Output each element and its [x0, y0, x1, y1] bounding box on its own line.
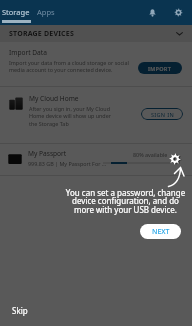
button[interactable]: STORAGE DEVICES	[0, 25, 192, 42]
button[interactable]: My Passport	[0, 144, 192, 175]
staticText: My Passport	[28, 149, 67, 158]
staticText: Apps	[37, 7, 55, 17]
staticText: 999.83 GB | My Passport For ...	[28, 160, 107, 167]
button[interactable]: IMPORT	[138, 62, 182, 74]
staticText: STORAGE DEVICES	[9, 29, 74, 39]
staticText: After you sign in, your My Cloud Home de…	[29, 105, 111, 128]
button[interactable]: Device settings	[169, 152, 183, 166]
staticText: IMPORT	[148, 65, 172, 72]
staticText: Import your data from a cloud storage or…	[9, 59, 133, 74]
staticText: 80% available	[133, 151, 168, 158]
button[interactable]: Apps	[32, 2, 60, 22]
button[interactable]: SIGN IN	[141, 108, 183, 120]
button[interactable]: Import Data	[0, 42, 192, 86]
staticText: NEXT	[152, 227, 170, 237]
staticText: SIGN IN	[151, 111, 174, 118]
staticText: You can set a password, change device co…	[62, 187, 189, 215]
button[interactable]: Settings	[168, 2, 188, 22]
staticText: Storage	[2, 7, 30, 17]
staticText: My Cloud Home	[29, 94, 79, 103]
button[interactable]: Storage	[0, 2, 32, 22]
button[interactable]: Notifications	[142, 2, 162, 22]
button[interactable]: My Cloud Home	[0, 87, 192, 143]
button[interactable]: NEXT	[140, 224, 181, 239]
button[interactable]: Skip	[0, 297, 40, 326]
staticText: Skip	[12, 305, 28, 316]
staticText: Import Data	[9, 48, 47, 57]
